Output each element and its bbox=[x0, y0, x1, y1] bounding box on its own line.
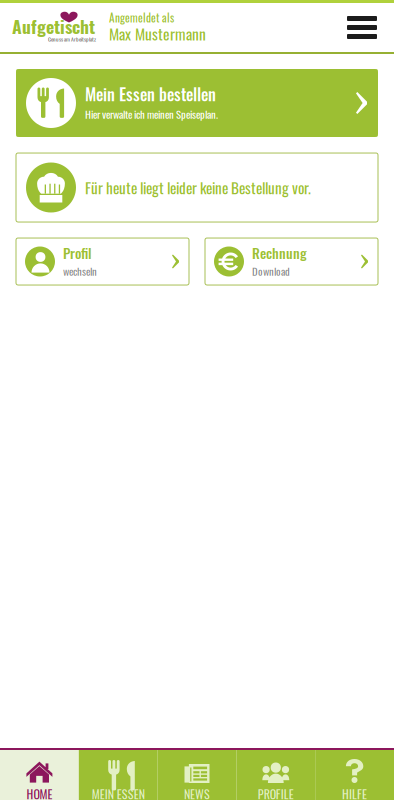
button[interactable]: HILFE bbox=[315, 750, 394, 800]
staticText: Aufgetischt bbox=[12, 13, 95, 39]
button[interactable]: HOME bbox=[0, 750, 79, 800]
button[interactable]: Rechnung bbox=[205, 238, 378, 285]
staticText: Max Mustermann bbox=[109, 22, 206, 45]
staticText: HOME bbox=[26, 785, 52, 800]
staticText: Für heute liegt leider keine Bestellung … bbox=[85, 176, 311, 199]
staticText: Rechnung bbox=[252, 242, 307, 263]
staticText: MEIN ESSEN bbox=[92, 785, 145, 800]
staticText: Angemeldet als bbox=[109, 9, 174, 26]
staticText: wechseln bbox=[63, 263, 97, 279]
button[interactable]: Profil bbox=[16, 238, 189, 285]
staticText: Genuss am Arbeitsplatz bbox=[48, 35, 96, 43]
staticText: Profil bbox=[63, 242, 92, 263]
staticText: Mein Essen bestellen bbox=[85, 81, 216, 106]
button[interactable]: MEIN ESSEN bbox=[79, 750, 158, 800]
button[interactable]: NEWS bbox=[158, 750, 236, 800]
button[interactable]: PROFILE bbox=[236, 750, 315, 800]
staticText: HILFE bbox=[342, 785, 367, 800]
staticText: NEWS bbox=[184, 785, 210, 800]
staticText: Hier verwalte ich meinen Speiseplan. bbox=[85, 106, 218, 122]
staticText: PROFILE bbox=[258, 785, 294, 800]
staticText: Download bbox=[252, 263, 290, 279]
button[interactable]: Mein Essen bestellen bbox=[16, 69, 378, 137]
button[interactable]: Menü bbox=[330, 3, 394, 51]
